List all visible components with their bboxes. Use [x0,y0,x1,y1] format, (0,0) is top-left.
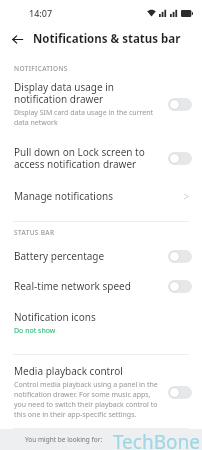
staticText: NOTIFICATIONS [14,64,68,73]
button[interactable]: Pull down on Lock screen to access notif… [0,136,202,180]
button[interactable]: Toggle off [168,98,192,111]
staticText: Real-time network speed [14,279,131,293]
staticText: Manage notifications [14,189,183,203]
staticText: Pull down on Lock screen to access notif… [14,145,162,171]
button[interactable]: Toggle off [168,280,192,293]
button[interactable]: Back [6,28,28,50]
staticText: Display SIM card data usage in the curre… [14,108,162,128]
staticText: Display data usage in notification drawe… [14,80,162,106]
staticText: 14:07 [29,7,53,19]
button[interactable]: Toggle off [168,386,192,399]
button[interactable]: Notification icons [0,302,202,344]
button[interactable]: Toggle off [168,250,192,263]
staticText: Battery percentage [14,249,105,263]
staticText: Do not show [14,326,56,336]
staticText: You might be looking for: [25,435,103,444]
button[interactable]: Media playback control [0,362,202,426]
staticText: Media playback control [14,364,123,378]
button[interactable]: Manage notifications [0,180,202,212]
staticText: Notification icons [14,310,96,324]
staticText: Control media playback using a panel in … [14,380,162,420]
button[interactable]: Real-time network speed [0,270,202,302]
staticText: Notifications & status bar [33,31,181,47]
staticText: STATUS BAR [14,228,55,237]
button[interactable]: Toggle off [168,152,192,165]
staticText: TechBone [112,429,200,450]
button[interactable]: Display data usage in notification drawe… [0,78,202,136]
button[interactable]: Battery percentage [0,242,202,270]
